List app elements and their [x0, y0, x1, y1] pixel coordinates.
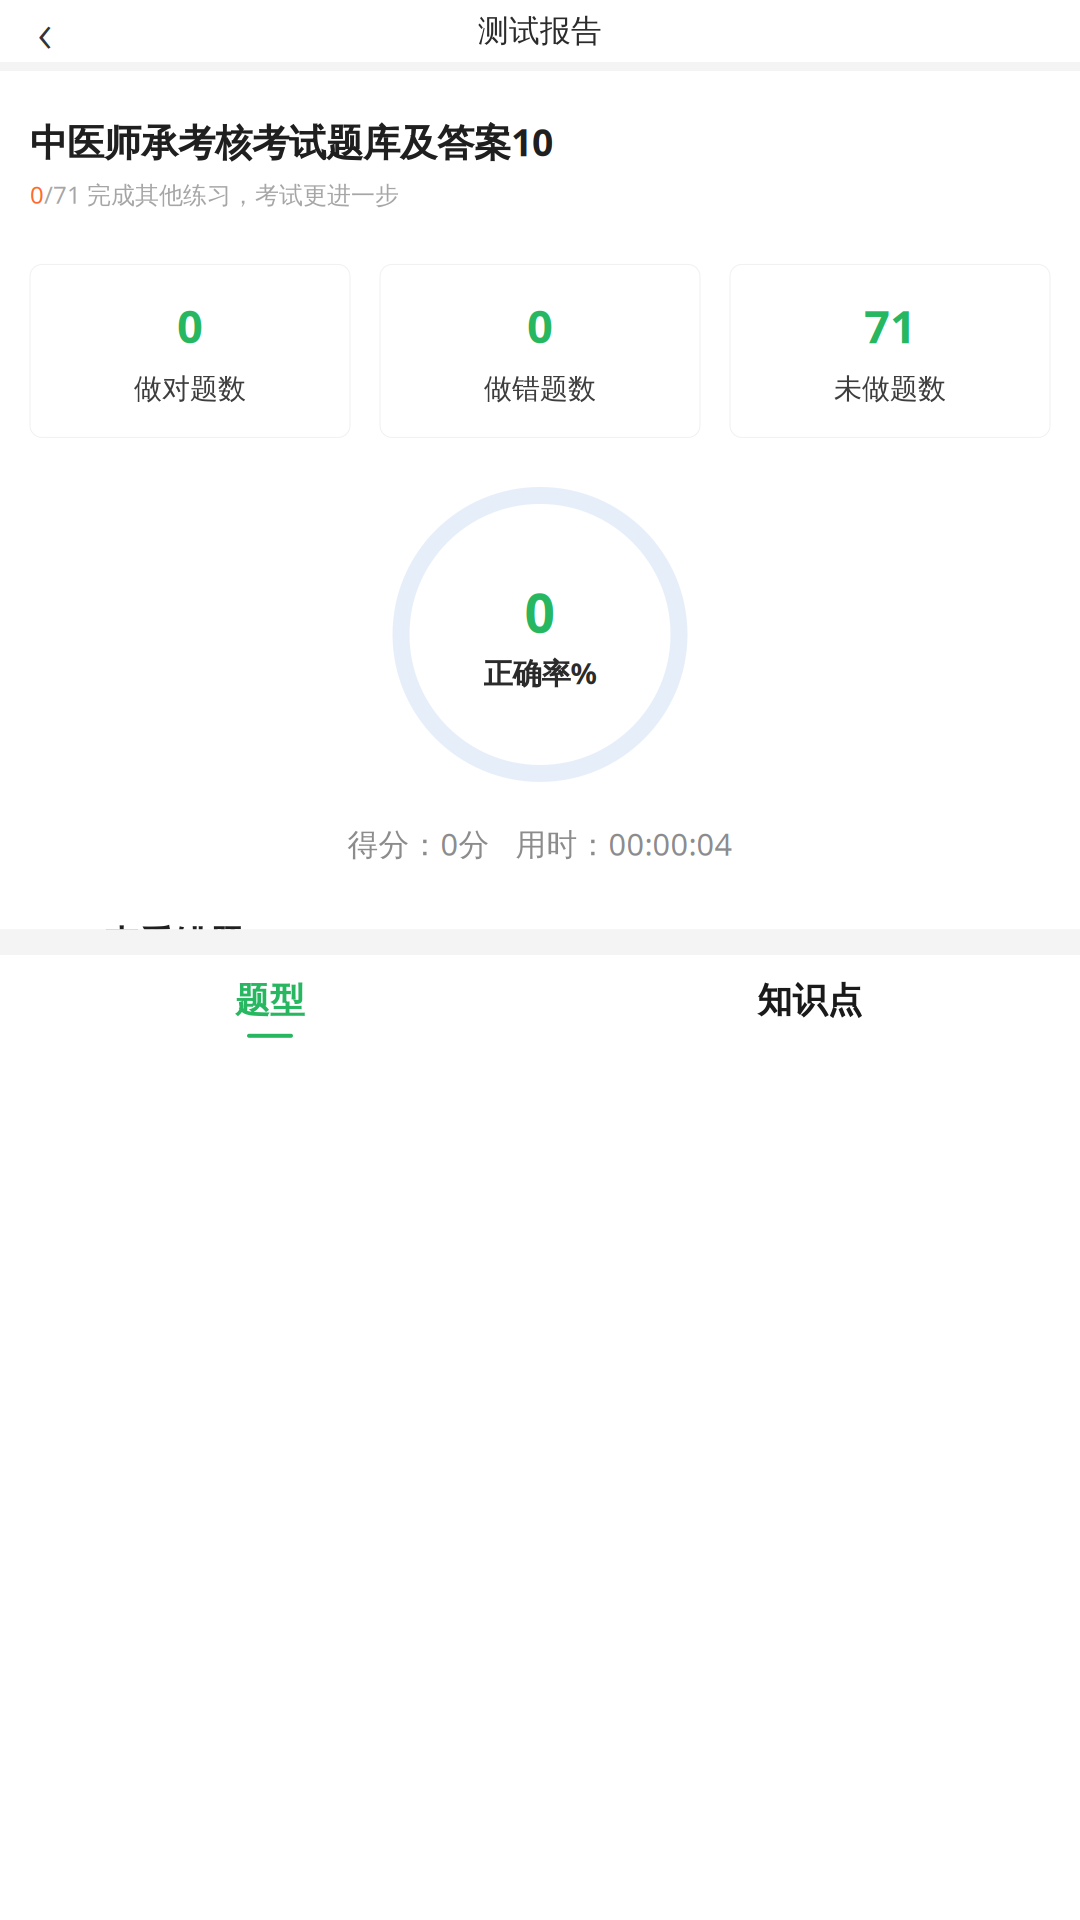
staticText: 题型 — [235, 979, 305, 1022]
staticText: › — [1039, 936, 1050, 992]
staticText: 71 — [864, 296, 916, 356]
staticText: 查看错题 — [104, 922, 244, 965]
staticText: 中医师承考核考试题库及答案10 — [30, 117, 553, 167]
button[interactable]: 知识点 — [540, 955, 1080, 1062]
staticText: 查看本次考试的错题集 — [104, 973, 374, 1006]
staticText: 得分：0分 — [347, 823, 489, 864]
button[interactable]: 题型 — [0, 955, 540, 1062]
staticText: 做错题数 — [484, 372, 596, 406]
button[interactable]: 重新练习 — [0, 1034, 1080, 1130]
staticText: ‹ — [37, 0, 52, 68]
staticText: 做对题数 — [134, 372, 246, 406]
staticText: 正确率% — [483, 653, 596, 692]
staticText: 0 — [30, 179, 44, 210]
staticText: 0 — [177, 296, 203, 356]
button[interactable]: ✕ — [0, 916, 1080, 1012]
staticText: /71 完成其他练习，考试更进一步 — [44, 179, 399, 210]
staticText: ✕ — [44, 947, 69, 981]
button[interactable]: Back — [14, 0, 76, 62]
staticText: 测试报告 — [478, 12, 602, 50]
staticText: 未做题数 — [834, 372, 946, 406]
staticText: 用时：00:00:04 — [515, 823, 732, 864]
staticText: 0 — [527, 296, 553, 356]
staticText: 0 — [524, 577, 555, 647]
staticText: 知识点 — [757, 979, 862, 1022]
